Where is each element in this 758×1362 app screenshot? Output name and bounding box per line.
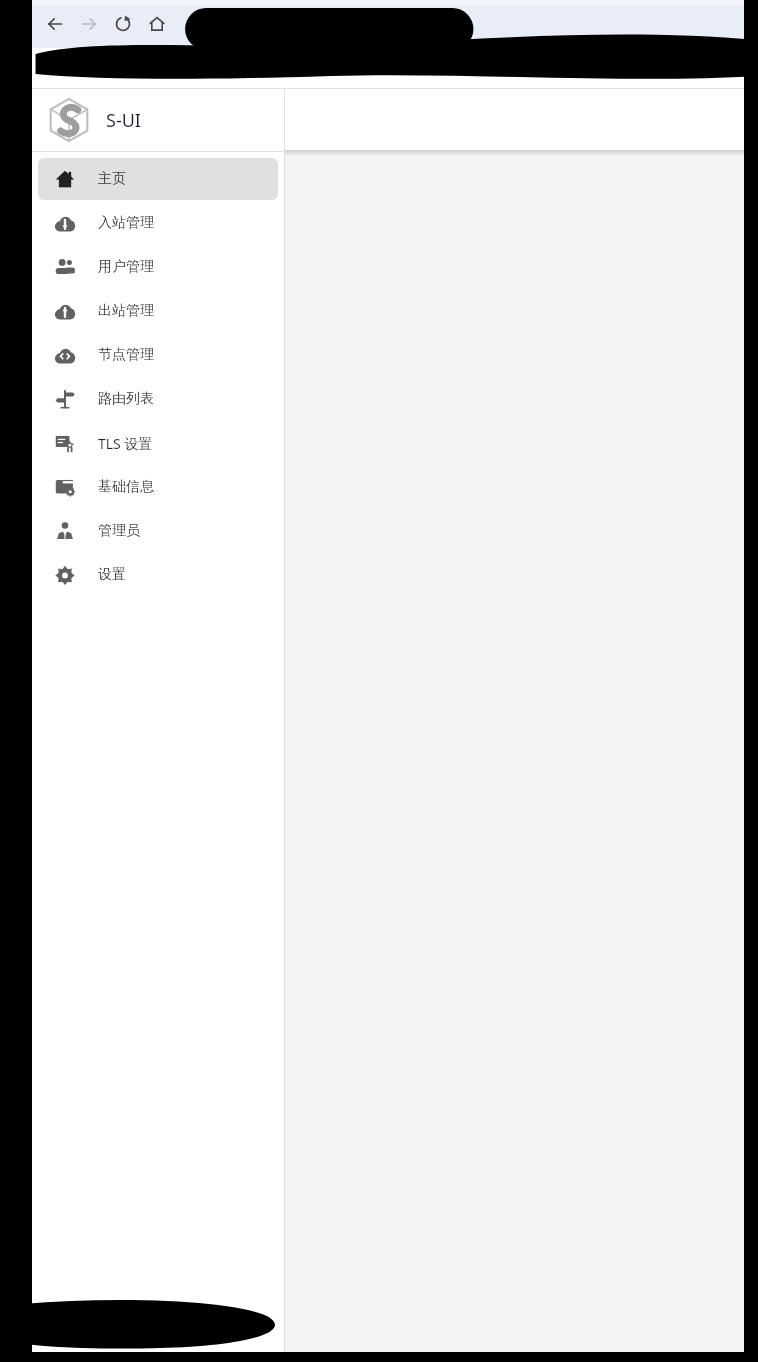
button[interactable]: Home [140,7,174,41]
staticText: 用户管理 [98,258,154,276]
button[interactable]: S-UI [32,89,284,151]
button[interactable]: TLS 设置 [38,422,278,464]
button[interactable]: 入站管理 [38,202,278,244]
button[interactable]: 设置 [38,554,278,596]
button[interactable]: 节点管理 [38,334,278,376]
button[interactable]: 管理员 [38,510,278,552]
staticText: 基础信息 [98,478,154,496]
button[interactable]: Forward [72,7,106,41]
button[interactable]: 路由列表 [38,378,278,420]
staticText: TLS 设置 [98,434,153,453]
button[interactable]: Reload [106,7,140,41]
button[interactable]: Back [38,7,72,41]
button[interactable]: 基础信息 [38,466,278,508]
staticText: 主页 [98,170,126,188]
staticText: S-UI [106,108,141,133]
staticText: 出站管理 [98,302,154,320]
button[interactable]: 出站管理 [38,290,278,332]
staticText: 节点管理 [98,346,154,364]
button[interactable]: 用户管理 [38,246,278,288]
staticText: 设置 [98,566,126,584]
staticText: 管理员 [98,522,140,540]
staticText: 路由列表 [98,390,154,408]
button[interactable]: 主页 [38,158,278,200]
staticText: 入站管理 [98,214,154,232]
